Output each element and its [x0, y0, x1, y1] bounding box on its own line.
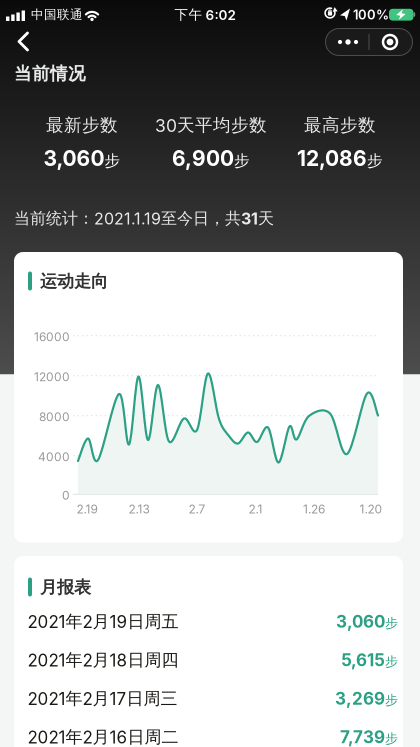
staticText: 3,269步 [335, 688, 398, 709]
staticText: 月报表 [40, 577, 91, 598]
staticText: 6,900步 [172, 146, 250, 171]
staticText: 2.7 [188, 502, 205, 516]
button[interactable]: 关闭 [369, 28, 413, 56]
button[interactable]: 返回 [4, 28, 44, 62]
staticText: 2021年2月19日周五 [27, 611, 178, 632]
staticText: 2021年2月16日周二 [27, 727, 178, 747]
staticText: 100% [353, 7, 389, 22]
staticText: 0 [62, 488, 70, 502]
staticText: 16000 [34, 330, 70, 344]
staticText: 5,615步 [341, 650, 398, 670]
staticText: 2.1 [248, 502, 262, 516]
staticText: 下午 6:02 [174, 6, 235, 23]
staticText: 2.13 [128, 502, 149, 516]
staticText: 30天平均步数 [155, 114, 267, 136]
staticText: 3,060步 [43, 146, 120, 171]
staticText: 最高步数 [304, 114, 376, 136]
staticText: 当前统计：2021.1.19至今日，共31天 [14, 208, 274, 228]
staticText: 中国联通 [31, 7, 83, 22]
staticText: 7,739步 [340, 727, 398, 747]
staticText: 3,060步 [336, 611, 398, 632]
staticText: 1.20 [359, 502, 382, 516]
staticText: 12000 [34, 370, 70, 384]
staticText: 2021年2月17日周三 [27, 688, 177, 709]
staticText: 2021年2月18日周四 [27, 650, 178, 670]
button[interactable]: 更多 [325, 28, 369, 56]
staticText: 最新步数 [46, 114, 118, 136]
staticText: 2.19 [76, 502, 97, 516]
staticText: 1.26 [303, 502, 325, 516]
staticText: 8000 [39, 410, 70, 424]
staticText: 4000 [38, 450, 70, 464]
staticText: 12,086步 [297, 146, 383, 171]
staticText: 当前情况 [14, 63, 86, 84]
staticText: 运动走向 [40, 271, 108, 292]
